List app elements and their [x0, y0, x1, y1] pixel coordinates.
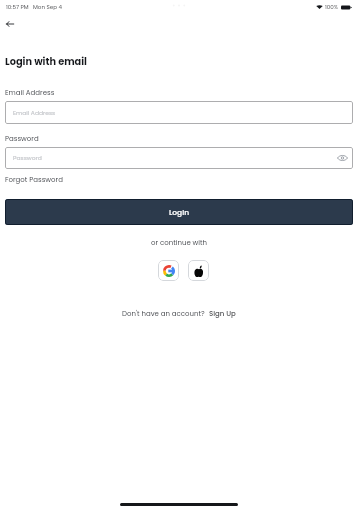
- button[interactable]: Sign in with Apple: [188, 260, 209, 281]
- staticText: or continue with: [151, 238, 208, 248]
- staticText: Password: [13, 154, 42, 162]
- staticText: Don't have an account?: [122, 309, 205, 319]
- button[interactable]: Sign in with Google: [158, 260, 179, 281]
- button[interactable]: Back: [2, 16, 18, 32]
- staticText: Login: [169, 207, 190, 217]
- other: Show password: [337, 155, 348, 161]
- button[interactable]: Forgot Password: [5, 175, 63, 185]
- button[interactable]: Sign Up: [209, 309, 236, 319]
- staticText: 100%: [325, 3, 339, 11]
- staticText: Email Address: [13, 109, 56, 117]
- button[interactable]: Password: [5, 147, 353, 169]
- staticText: 10:57 PM: [6, 3, 29, 11]
- staticText: Email Address: [5, 88, 55, 98]
- staticText: Password: [5, 134, 39, 144]
- button[interactable]: Email Address: [5, 101, 353, 124]
- staticText: Login with email: [5, 55, 88, 69]
- button[interactable]: Login: [5, 199, 353, 225]
- staticText: Mon Sep 4: [33, 3, 63, 11]
